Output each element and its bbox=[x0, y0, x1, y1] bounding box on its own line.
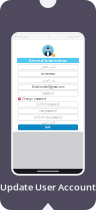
button[interactable]: Change password bbox=[18, 96, 78, 102]
staticText: password bbox=[42, 92, 54, 95]
staticText: General Information bbox=[28, 58, 67, 63]
staticText: الاسم الكامل bbox=[40, 65, 55, 68]
staticText: كلمة المرور bbox=[41, 121, 54, 124]
staticText: رقم الهاتف bbox=[41, 79, 54, 82]
staticText: Update User Account bbox=[0, 181, 96, 193]
staticText: Confirm password bbox=[36, 103, 60, 106]
staticText: Save bbox=[45, 126, 51, 129]
staticText: confirm new password bbox=[33, 116, 62, 119]
staticText: Ibrahim.mhd@gmail.com bbox=[32, 85, 64, 89]
staticText: new password bbox=[39, 109, 57, 113]
button[interactable]: Save bbox=[18, 124, 78, 130]
staticText: Change password bbox=[22, 97, 46, 101]
staticText: MOHAMMED bbox=[40, 72, 55, 75]
